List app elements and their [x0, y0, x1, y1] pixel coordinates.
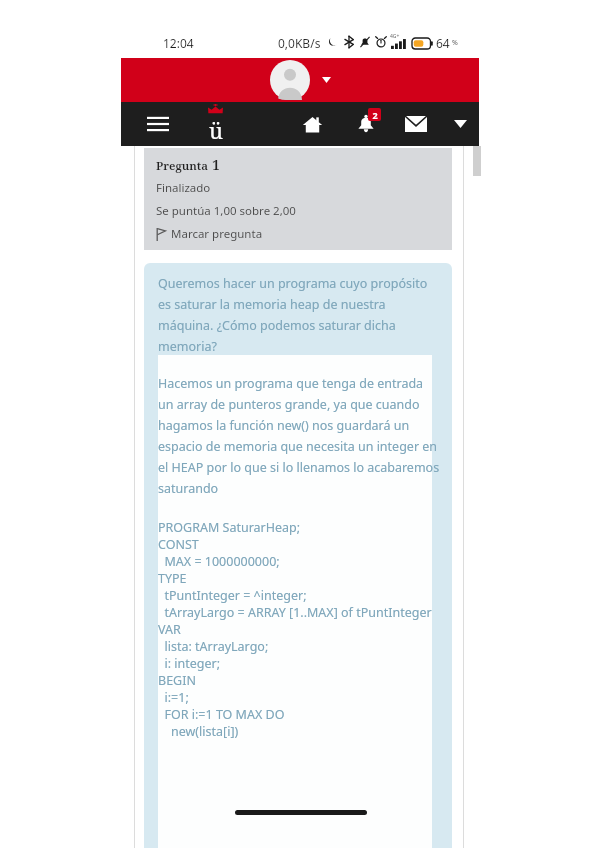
staticText: FOR i:=1 TO MAX DO: [158, 706, 285, 723]
staticText: MAX = 1000000000;: [158, 553, 280, 570]
staticText: 1: [212, 155, 220, 174]
staticText: 4G+: [390, 33, 400, 40]
button[interactable]: Queremos hacer un programa cuyo propósit…: [144, 263, 452, 848]
staticText: tPuntInteger = ^integer;: [158, 587, 307, 604]
staticText: i: integer;: [158, 655, 221, 672]
button[interactable]: Marcar pregunta: [156, 226, 263, 242]
staticText: Marcar pregunta: [171, 226, 263, 242]
staticText: Queremos hacer un programa cuyo propósit…: [158, 275, 440, 355]
staticText: Se puntúa 1,00 sobre 2,00: [156, 203, 296, 219]
staticText: BEGIN: [158, 672, 196, 689]
button[interactable]: Menú: [139, 102, 177, 146]
staticText: 64: [436, 35, 450, 51]
staticText: CONST: [158, 536, 199, 553]
staticText: Pregunta: [156, 158, 212, 174]
staticText: PROGRAM SaturarHeap;: [158, 519, 301, 536]
button[interactable]: Mensajes: [393, 102, 439, 146]
staticText: 12:04: [163, 35, 194, 51]
staticText: 2: [372, 109, 378, 121]
staticText: new(lista[i]): [158, 723, 239, 740]
staticText: lista: tArrayLargo;: [158, 638, 269, 655]
staticText: i:=1;: [158, 689, 189, 706]
staticText: ü: [209, 115, 223, 145]
button[interactable]: Pregunta: [144, 148, 452, 250]
staticText: TYPE: [158, 570, 187, 587]
staticText: tArrayLargo = ARRAY [1..MAX] of tPuntInt…: [158, 604, 432, 621]
button[interactable]: UNED inicio: [193, 102, 237, 146]
button[interactable]: Perfil de usuario: [266, 60, 335, 100]
staticText: %: [452, 38, 458, 48]
button[interactable]: Más opciones: [441, 102, 479, 146]
button[interactable]: Inicio: [289, 102, 335, 146]
staticText: VAR: [158, 621, 181, 638]
staticText: Finalizado: [156, 180, 211, 196]
button[interactable]: Notificaciones, 2 nuevas: [343, 102, 389, 146]
staticText: Hacemos un programa que tenga de entrada…: [158, 375, 440, 497]
staticText: 0,0KB/s: [278, 35, 321, 51]
